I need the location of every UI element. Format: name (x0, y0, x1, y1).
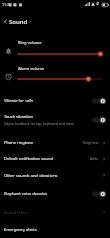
staticText: Elephant voice denoise (4, 191, 48, 196)
button[interactable]: Other sounds and vibrations (0, 167, 110, 183)
button[interactable]: Emergency alerts (0, 221, 110, 237)
staticText: Emergency alerts (4, 227, 37, 232)
button[interactable]: Alarm volume (14, 74, 106, 84)
button[interactable]: Touch vibration (0, 111, 110, 129)
button[interactable]: Sound Effect (0, 204, 110, 220)
button[interactable]: Toggle (92, 97, 106, 105)
button[interactable]: Phone ringtone (0, 134, 110, 150)
staticText: Haptic feedback for tap, keyboard and mo… (4, 121, 75, 126)
staticText: 11:38 (2, 2, 12, 7)
staticText: Ring volume (18, 40, 42, 45)
button[interactable]: Toggle (92, 116, 106, 124)
staticText: 41 (96, 2, 100, 6)
button[interactable]: Ring volume (14, 49, 106, 59)
staticText: Other sounds and vibrations (4, 173, 58, 178)
staticText: Vibrate for calls (4, 98, 34, 103)
staticText: Sound Effect (4, 210, 28, 215)
staticText: Sound (9, 18, 28, 26)
staticText: Touch vibration (4, 114, 33, 119)
staticText: Alarm volume (18, 66, 45, 71)
staticText: Kalgi new (83, 140, 99, 145)
button[interactable]: Navigate up (0, 15, 10, 28)
button[interactable]: Elephant voice denoise (0, 185, 110, 203)
button[interactable]: Vibrate for calls (0, 92, 110, 110)
staticText: Default notification sound (4, 156, 53, 161)
staticText: Phone ringtone (4, 140, 34, 145)
staticText: Ambi (90, 156, 99, 161)
button[interactable]: Default notification sound (0, 150, 110, 166)
button[interactable]: Toggle (92, 190, 106, 198)
